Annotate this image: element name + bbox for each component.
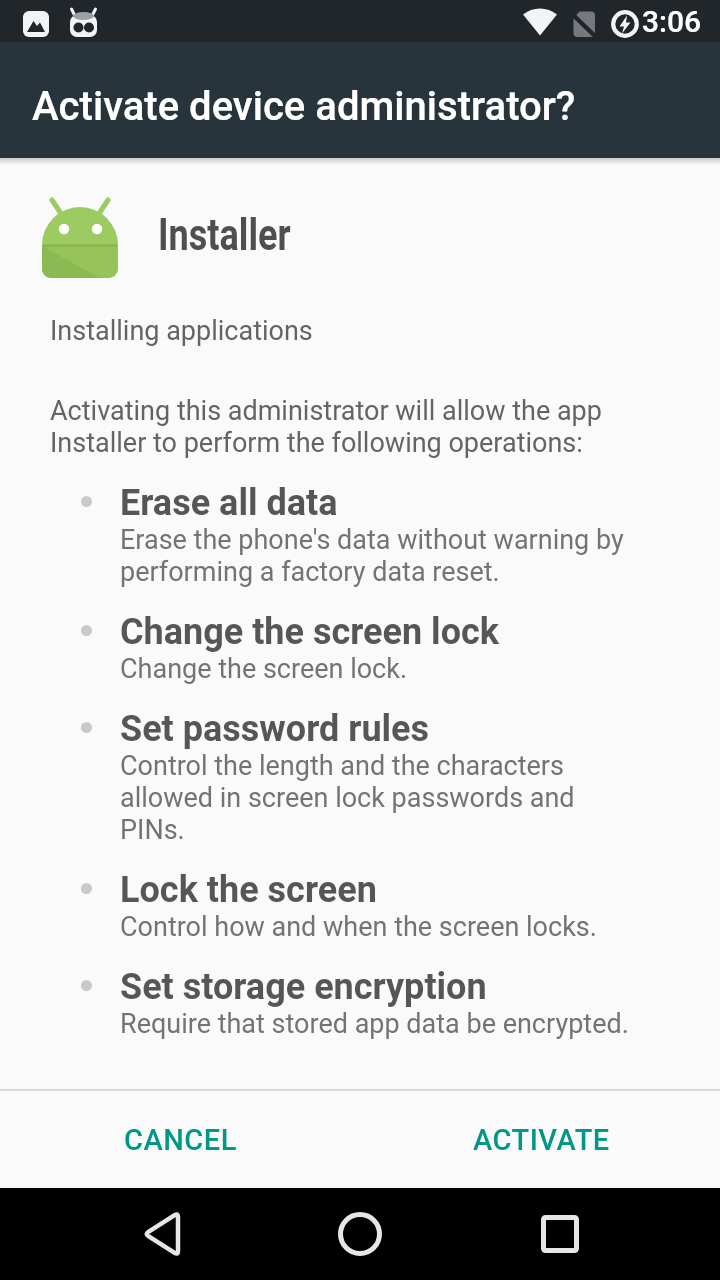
staticText: ACTIVATE bbox=[473, 1123, 610, 1157]
staticText: Activate device administrator? bbox=[32, 83, 576, 130]
staticText: Change the screen lock bbox=[120, 611, 500, 653]
staticText: Set password rules bbox=[120, 708, 430, 750]
button[interactable]: ACTIVATE bbox=[453, 1103, 630, 1177]
staticText: Control how and when the screen locks. bbox=[120, 911, 597, 943]
button[interactable] bbox=[331, 1205, 389, 1263]
staticText: Require that stored app data be encrypte… bbox=[120, 1008, 629, 1040]
staticText: Installing applications bbox=[50, 315, 313, 347]
staticText: Control the length and the characters al… bbox=[120, 750, 575, 846]
button[interactable] bbox=[133, 1205, 191, 1263]
staticText: 3:06 bbox=[642, 4, 702, 39]
staticText: Set storage encryption bbox=[120, 966, 487, 1008]
staticText: Change the screen lock. bbox=[120, 653, 408, 685]
staticText: CANCEL bbox=[124, 1123, 237, 1157]
staticText: Lock the screen bbox=[120, 869, 377, 911]
button[interactable] bbox=[531, 1205, 589, 1263]
staticText: Erase the phone's data without warning b… bbox=[120, 524, 624, 588]
staticText: Installer bbox=[158, 209, 291, 261]
button[interactable]: CANCEL bbox=[104, 1103, 257, 1177]
staticText: Activating this administrator will allow… bbox=[50, 395, 602, 459]
staticText: Erase all data bbox=[120, 482, 338, 524]
